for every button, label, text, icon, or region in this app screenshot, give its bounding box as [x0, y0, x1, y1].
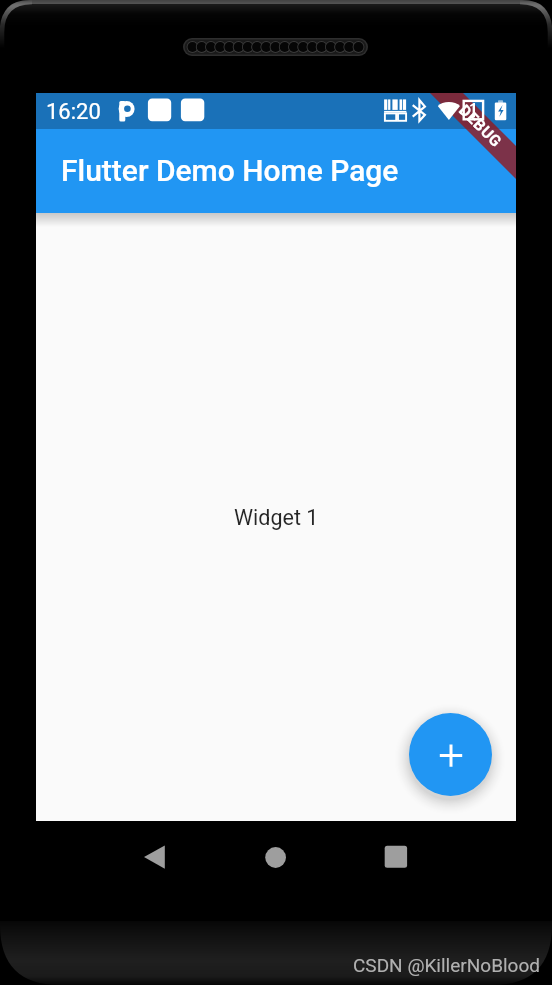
- staticText: Flutter Demo Home Page: [61, 153, 399, 188]
- staticText: Widget 1: [234, 505, 319, 530]
- staticText: DEBUG: [455, 101, 505, 151]
- button[interactable]: Add: [409, 713, 492, 796]
- staticText: 16:20: [46, 99, 101, 125]
- staticText: CSDN @KillerNoBlood: [353, 954, 540, 976]
